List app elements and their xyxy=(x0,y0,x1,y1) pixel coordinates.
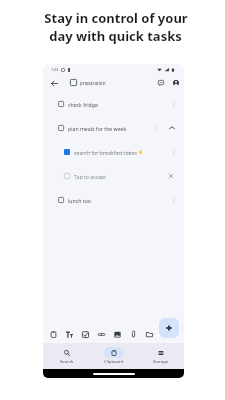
staticText: 1:22 xyxy=(51,67,59,72)
button[interactable]: Folder xyxy=(141,324,157,338)
button[interactable]: Search xyxy=(43,344,90,368)
staticText: Clipboard xyxy=(104,359,124,365)
button[interactable]: Storage xyxy=(137,344,184,368)
staticText: plan meals for the week xyxy=(68,125,127,132)
staticText: check fridge xyxy=(68,101,98,108)
button[interactable]: More options xyxy=(169,99,179,109)
button[interactable]: search for breakfast ideas xyxy=(43,140,184,164)
staticText: Storage xyxy=(153,359,169,365)
staticText: preparation xyxy=(80,80,106,86)
button[interactable]: Tap to accept xyxy=(43,164,184,188)
staticText: search for breakfast ideas xyxy=(74,149,137,156)
button[interactable]: Attach file xyxy=(125,324,141,338)
button[interactable]: Collapse xyxy=(167,123,177,133)
staticText: lunch too xyxy=(68,197,91,204)
button[interactable]: Account xyxy=(170,77,181,88)
staticText: Stay in control of your xyxy=(44,9,188,27)
button[interactable]: Image xyxy=(109,324,125,338)
button[interactable]: Clipboard xyxy=(90,344,137,368)
button[interactable]: Clipboard xyxy=(45,324,61,338)
staticText: Tap to accept xyxy=(74,173,107,180)
button[interactable]: Dismiss xyxy=(166,171,176,181)
staticText: day with quick tasks xyxy=(49,27,182,45)
button[interactable]: Comments xyxy=(155,77,166,88)
staticText: Search xyxy=(60,359,74,365)
button[interactable]: check fridge xyxy=(43,92,184,116)
button[interactable]: lunch too xyxy=(43,188,184,212)
button[interactable]: Add xyxy=(159,318,179,338)
button[interactable]: More options xyxy=(151,123,161,133)
button[interactable]: More options xyxy=(169,147,179,157)
button[interactable]: Checklist xyxy=(77,324,93,338)
button[interactable]: Link xyxy=(93,324,109,338)
button[interactable]: plan meals for the week xyxy=(43,116,184,140)
button[interactable]: More options xyxy=(169,195,179,205)
button[interactable]: Text format xyxy=(61,324,77,338)
button[interactable]: Back xyxy=(47,76,61,90)
